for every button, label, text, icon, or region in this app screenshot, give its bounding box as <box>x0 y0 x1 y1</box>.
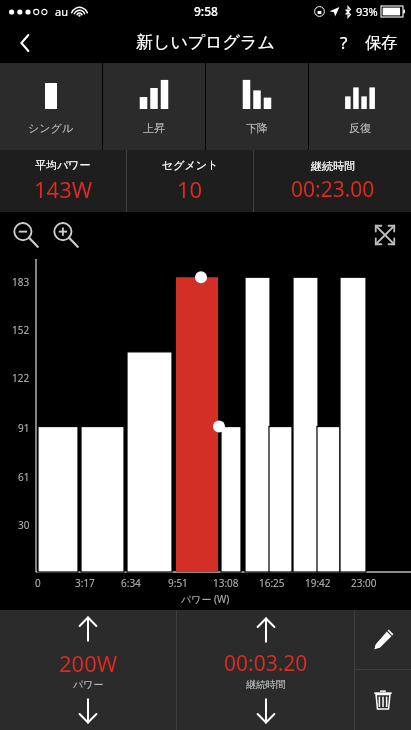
staticText: セグメント <box>162 158 219 172</box>
button[interactable]: Fullscreen <box>367 217 403 253</box>
staticText: 143W <box>34 174 93 204</box>
button[interactable]: シングル <box>0 63 102 150</box>
button[interactable]: Edit <box>355 610 411 669</box>
button[interactable]: Increase パワー <box>0 610 176 648</box>
staticText: 00:03.20 <box>224 649 308 678</box>
button[interactable] <box>0 257 411 610</box>
button[interactable]: 継続時間 <box>254 150 411 212</box>
staticText: 上昇 <box>143 121 165 135</box>
staticText: シングル <box>28 121 74 135</box>
staticText: 反復 <box>349 121 371 135</box>
staticText: 平均パワー <box>35 158 91 172</box>
staticText: 93% <box>356 4 378 19</box>
button[interactable]: Increase 継続時間 <box>177 610 354 649</box>
staticText: パワー <box>73 678 104 691</box>
button[interactable]: Zoom in <box>46 215 86 255</box>
button[interactable]: Back <box>0 22 50 63</box>
staticText: 新しいプログラム <box>136 32 275 53</box>
button[interactable]: Zoom out <box>6 215 46 255</box>
staticText: 9:58 <box>194 3 218 19</box>
staticText: 00:23.00 <box>291 175 375 204</box>
button[interactable]: Help <box>327 22 361 63</box>
button[interactable]: 平均パワー <box>0 150 126 212</box>
staticText: 保存 <box>365 33 397 53</box>
button[interactable]: Decrease パワー <box>0 691 176 730</box>
button[interactable]: 上昇 <box>103 63 205 150</box>
button[interactable]: Decrease 継続時間 <box>177 691 354 730</box>
button[interactable]: Delete <box>355 670 411 730</box>
staticText: 継続時間 <box>311 159 355 173</box>
staticText: au <box>55 4 68 19</box>
button[interactable]: 下降 <box>206 63 308 150</box>
staticText: 下降 <box>246 121 268 135</box>
button[interactable]: 反復 <box>309 63 411 150</box>
staticText: 200W <box>59 648 118 678</box>
button[interactable]: 保存 <box>361 22 411 63</box>
button[interactable]: セグメント <box>127 150 253 212</box>
staticText: ? <box>340 31 348 54</box>
staticText: 10 <box>177 174 203 204</box>
staticText: 継続時間 <box>246 678 286 691</box>
